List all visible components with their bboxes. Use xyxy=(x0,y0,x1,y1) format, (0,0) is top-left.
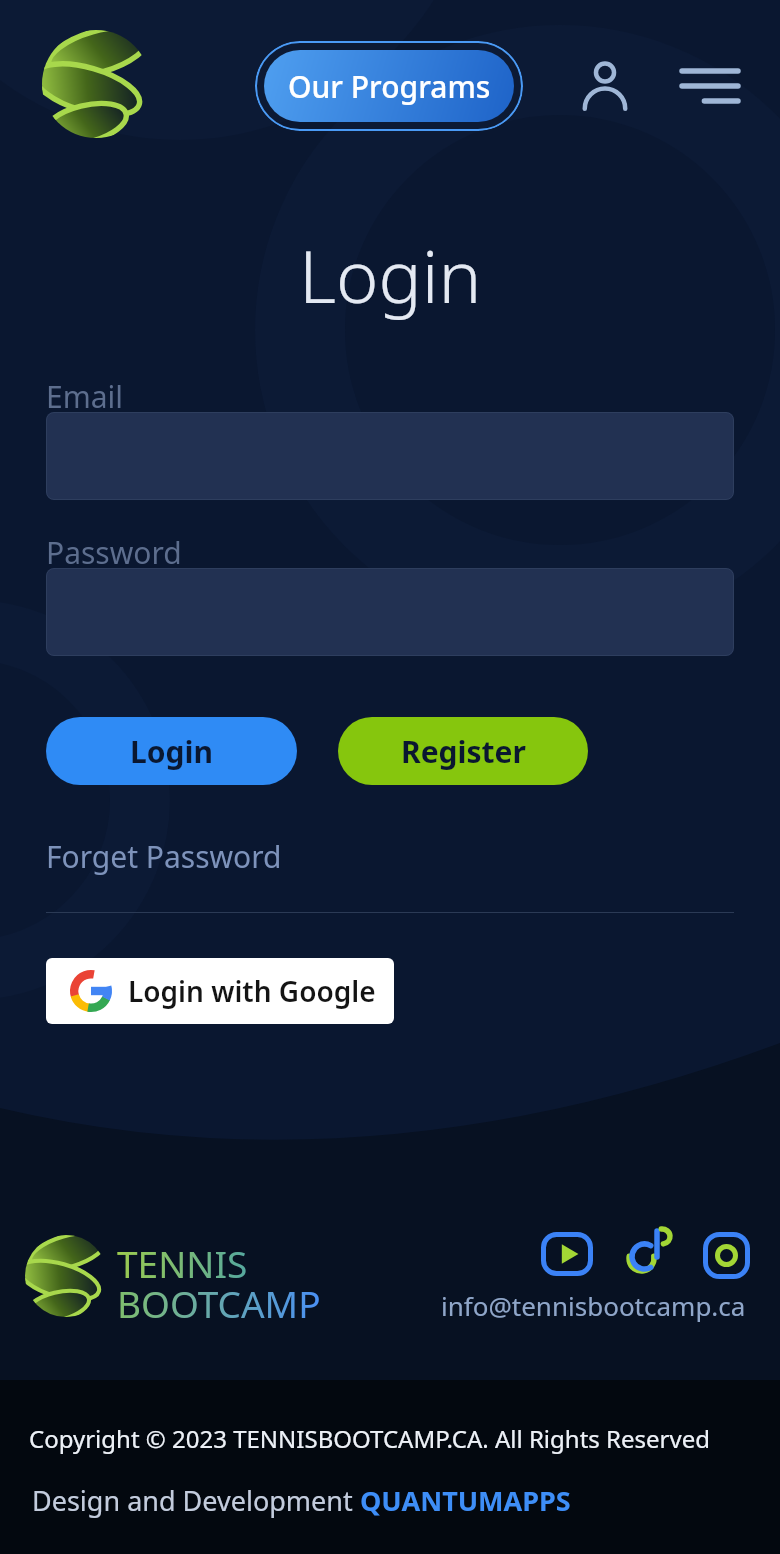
button[interactable] xyxy=(682,68,738,104)
staticText: Copyright © 2023 TENNISBOOTCAMP.CA. All … xyxy=(29,1422,710,1455)
staticText: Email xyxy=(46,376,124,417)
staticText: Login xyxy=(130,731,213,772)
staticText: BOOTCAMP xyxy=(117,1278,321,1328)
button[interactable]: Register xyxy=(338,717,588,785)
button[interactable]: info@tennisbootcamp.ca xyxy=(441,1288,746,1323)
staticText: Password xyxy=(46,532,182,573)
staticText: Design and Development xyxy=(32,1482,360,1519)
staticText: Register xyxy=(401,731,526,772)
button[interactable] xyxy=(583,62,627,110)
staticText: Login xyxy=(299,226,482,324)
button[interactable]: Login xyxy=(46,717,297,785)
button[interactable]: Login with Google xyxy=(46,958,394,1024)
button[interactable] xyxy=(628,1226,672,1274)
button[interactable]: Forget Password xyxy=(46,836,282,877)
staticText: TENNIS xyxy=(117,1238,248,1288)
button[interactable]: Our Programs xyxy=(264,50,514,122)
button[interactable]: QUANTUMAPPS xyxy=(360,1482,571,1519)
button[interactable] xyxy=(541,1232,593,1276)
staticText: Our Programs xyxy=(288,66,491,107)
button[interactable] xyxy=(703,1232,750,1279)
button[interactable] xyxy=(42,30,150,138)
staticText: Login with Google xyxy=(128,972,376,1010)
